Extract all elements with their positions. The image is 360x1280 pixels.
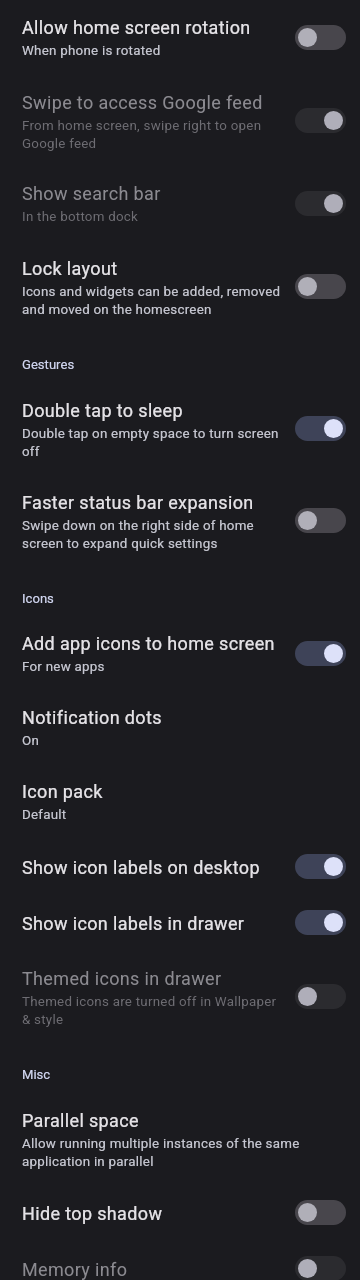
staticText: Allow home screen rotation (22, 17, 251, 38)
button[interactable]: Faster status bar expansion (0, 474, 360, 566)
staticText: Parallel space (22, 1110, 139, 1131)
button[interactable]: Add app icons to home screen (0, 616, 360, 690)
button[interactable]: Allow home screen rotation (295, 25, 346, 50)
staticText: Lock layout (22, 258, 118, 279)
staticText: Allow running multiple instances of the … (22, 1136, 346, 1169)
staticText: Double tap to sleep (22, 400, 183, 421)
button[interactable]: Add app icons to home screen (295, 641, 346, 666)
button[interactable]: Double tap to sleep (295, 416, 346, 441)
button[interactable]: Themed icons in drawer (0, 950, 360, 1042)
staticText: In the bottom dock (22, 209, 139, 225)
staticText: Show icon labels on desktop (22, 857, 260, 878)
button[interactable]: Themed icons in drawer (295, 984, 346, 1009)
staticText: When phone is rotated (22, 43, 161, 59)
button[interactable]: Notification dots (0, 690, 360, 764)
button[interactable]: Show icon labels in drawer (295, 910, 346, 935)
staticText: Themed icons in drawer (22, 968, 222, 989)
staticText: Show search bar (22, 183, 161, 204)
button[interactable]: Hide top shadow (295, 1200, 346, 1225)
staticText: From home screen, swipe right to open Go… (22, 118, 284, 151)
staticText: Show icon labels in drawer (22, 913, 245, 934)
staticText: Memory info (22, 1259, 128, 1280)
button[interactable]: Show icon labels in drawer (0, 894, 360, 950)
button[interactable]: Allow home screen rotation (0, 0, 360, 74)
staticText: Gestures (22, 357, 75, 372)
button[interactable]: Lock layout (295, 274, 346, 299)
staticText: Double tap on empty space to turn screen… (22, 426, 284, 459)
staticText: Add app icons to home screen (22, 633, 275, 654)
staticText: Swipe down on the right side of home scr… (22, 518, 284, 551)
button[interactable]: Show search bar (295, 191, 346, 216)
button[interactable]: Icon pack (0, 764, 360, 838)
button[interactable]: Swipe to access Google feed (0, 74, 360, 166)
staticText: Default (22, 807, 67, 823)
button[interactable]: Lock layout (0, 240, 360, 332)
button[interactable]: Show icon labels on desktop (295, 854, 346, 879)
staticText: Misc (22, 1067, 51, 1082)
button[interactable]: Double tap to sleep (0, 382, 360, 474)
button[interactable]: Faster status bar expansion (295, 508, 346, 533)
staticText: Notification dots (22, 707, 162, 728)
button[interactable]: Memory info (0, 1240, 360, 1280)
staticText: Faster status bar expansion (22, 492, 254, 513)
button[interactable]: Parallel space (0, 1092, 360, 1184)
staticText: Icon pack (22, 781, 103, 802)
staticText: On (22, 733, 40, 749)
button[interactable]: Show icon labels on desktop (0, 838, 360, 894)
staticText: Icons and widgets can be added, removed … (22, 284, 284, 317)
staticText: Swipe to access Google feed (22, 92, 263, 113)
button[interactable]: Swipe to access Google feed (295, 108, 346, 133)
button[interactable]: Memory info (295, 1256, 346, 1280)
button[interactable]: Show search bar (0, 166, 360, 240)
staticText: Themed icons are turned off in Wallpaper… (22, 994, 284, 1027)
button[interactable]: Hide top shadow (0, 1184, 360, 1240)
staticText: Hide top shadow (22, 1203, 163, 1224)
staticText: For new apps (22, 659, 105, 675)
staticText: Icons (22, 591, 54, 606)
